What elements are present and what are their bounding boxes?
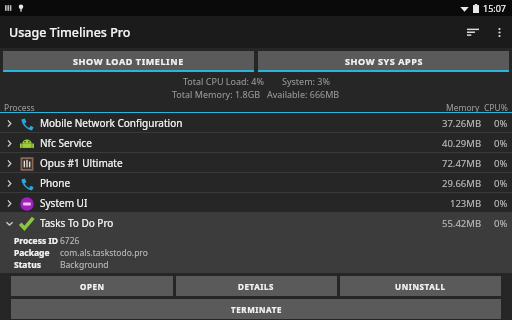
button[interactable]: Tasks To Do Pro [0,213,512,233]
staticText: Tasks To Do Pro [40,216,426,230]
staticText: 55.42MB [442,217,482,230]
button[interactable]: TERMINATE [11,299,501,319]
button[interactable]: Mobile Network Configuration [0,113,512,133]
staticText: 0% [494,217,508,230]
staticText: TERMINATE [231,304,282,315]
button[interactable]: OPEN [11,276,173,296]
staticText: UNINSTALL [395,281,446,292]
staticText: 15:07 [483,2,507,14]
staticText: Background [60,259,109,271]
staticText: Opus #1 Ultimate [40,156,426,170]
staticText: Process [4,102,35,113]
staticText: 72.47MB [442,157,482,170]
staticText: Mobile Network Configuration [40,116,426,130]
button[interactable]: Opus #1 Ultimate [0,153,512,173]
staticText: 40.29MB [442,137,482,150]
staticText: 6726 [60,235,80,247]
staticText: 29.66MB [442,177,482,190]
staticText: Phone [40,176,426,190]
staticText: 0% [494,137,508,150]
staticText: System: 3% [282,75,330,87]
staticText: Available: 666MB [267,88,340,100]
button[interactable]: SHOW SYS APPS [258,51,509,72]
button[interactable]: SHOW LOAD TIMELINE [3,51,254,72]
button[interactable]: Sort [460,19,486,45]
staticText: SHOW LOAD TIMELINE [73,55,184,67]
button[interactable]: More options [486,19,512,45]
staticText: 123MB [450,197,482,210]
staticText: Status [14,259,41,271]
staticText: 0% [494,157,508,170]
staticText: Nfc Service [40,136,426,150]
staticText: SHOW SYS APPS [345,55,423,67]
button[interactable]: Nfc Service [0,133,512,153]
staticText: OPEN [80,281,105,292]
button[interactable]: Phone [0,173,512,193]
staticText: Package [14,247,50,259]
button[interactable]: System UI [0,193,512,213]
staticText: System UI [40,196,426,210]
staticText: Total CPU Load: 4% [183,75,264,87]
staticText: Total Memory: 1.8GB [172,88,261,100]
staticText: 0% [494,117,508,130]
button[interactable]: DETAILS [176,276,337,296]
button[interactable]: UNINSTALL [340,276,501,296]
staticText: 0% [494,197,508,210]
staticText: Usage Timelines Pro [9,24,131,41]
staticText: Process ID [14,235,58,247]
staticText: com.als.taskstodo.pro [60,247,148,259]
staticText: DETAILS [238,281,275,292]
staticText: Memory [446,102,480,113]
staticText: CPU% [484,102,508,113]
staticText: 0% [494,177,508,190]
staticText: 37.26MB [442,117,482,130]
